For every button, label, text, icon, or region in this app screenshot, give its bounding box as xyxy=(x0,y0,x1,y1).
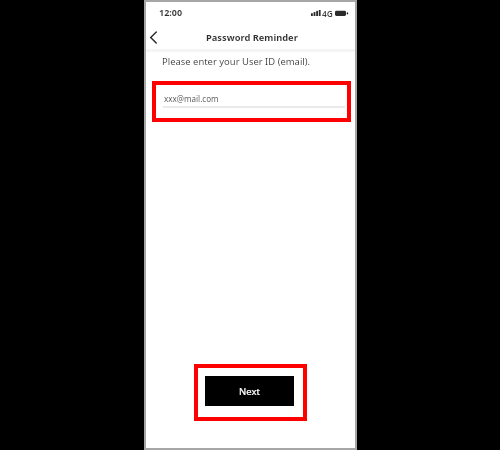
staticText: Password Reminder xyxy=(206,31,298,44)
button[interactable]: Back xyxy=(142,26,164,48)
staticText: Next xyxy=(239,385,260,398)
staticText: 4G xyxy=(322,8,333,19)
staticText: 12:00 xyxy=(159,6,183,18)
button[interactable]: Next xyxy=(205,376,294,406)
staticText: Please enter your User ID (email). xyxy=(162,55,311,68)
button[interactable]: xxx@mail.com xyxy=(152,81,351,122)
staticText: xxx@mail.com xyxy=(164,93,219,104)
